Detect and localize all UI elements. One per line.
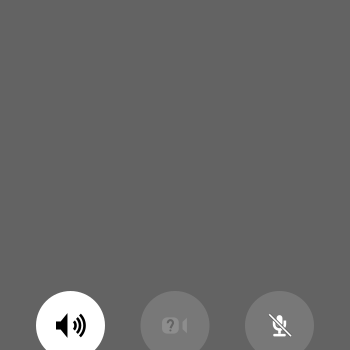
button[interactable]: Turn Camera On <box>140 291 209 350</box>
button[interactable]: Unmute <box>245 291 314 350</box>
button[interactable]: Speaker <box>36 291 105 350</box>
